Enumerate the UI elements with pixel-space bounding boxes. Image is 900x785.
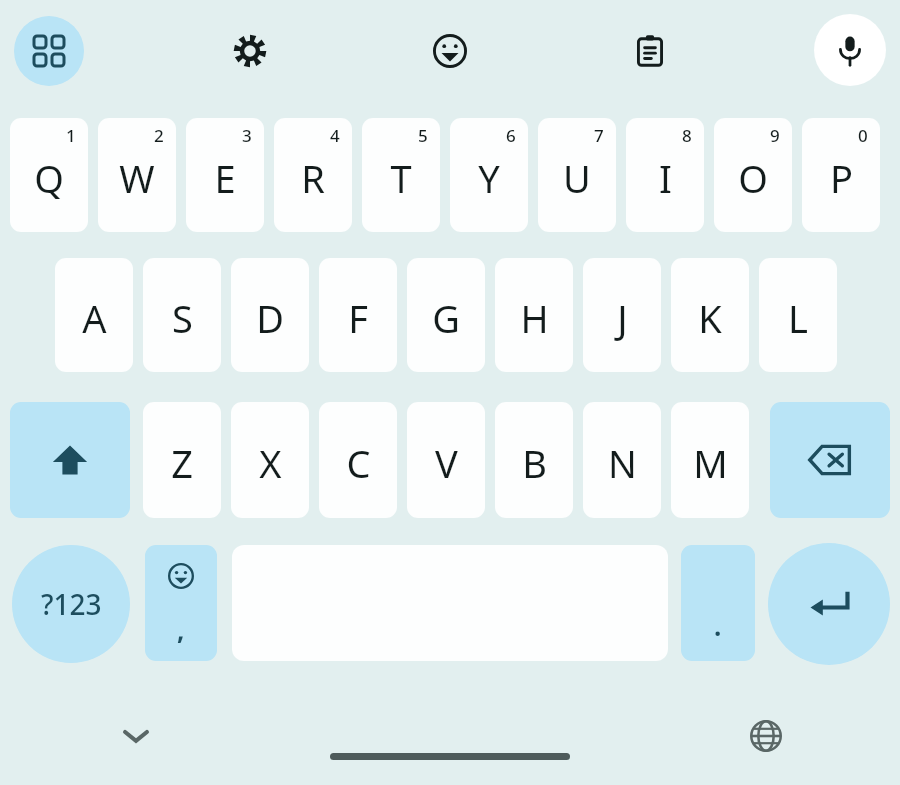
button[interactable]: J: [583, 258, 661, 372]
button[interactable]: V: [407, 402, 485, 518]
staticText: X: [259, 437, 282, 489]
staticText: C: [346, 437, 371, 489]
staticText: D: [256, 292, 284, 344]
button[interactable]: G: [407, 258, 485, 372]
button[interactable]: S: [143, 258, 221, 372]
button[interactable]: K: [671, 258, 749, 372]
button[interactable]: Toolbar: [14, 16, 84, 86]
button[interactable]: L: [759, 258, 837, 372]
button[interactable]: Enter: [768, 543, 890, 665]
staticText: B: [522, 437, 547, 489]
button[interactable]: Y: [450, 118, 528, 232]
staticText: A: [82, 292, 107, 344]
button[interactable]: P: [802, 118, 880, 232]
staticText: F: [348, 292, 368, 344]
staticText: W: [119, 152, 155, 204]
button[interactable]: N: [583, 402, 661, 518]
button[interactable]: Settings: [215, 16, 285, 86]
staticText: K: [698, 292, 722, 344]
button[interactable]: D: [231, 258, 309, 372]
staticText: ?123: [41, 585, 102, 623]
staticText: O: [738, 152, 768, 204]
staticText: M: [693, 437, 728, 489]
button[interactable]: Emoji and comma: [145, 545, 217, 661]
staticText: 6: [506, 124, 516, 147]
staticText: ,: [177, 612, 185, 647]
staticText: 5: [418, 124, 428, 147]
staticText: H: [520, 292, 549, 344]
staticText: R: [301, 152, 325, 204]
button[interactable]: B: [495, 402, 573, 518]
staticText: Q: [34, 152, 64, 204]
staticText: L: [788, 292, 808, 344]
button[interactable]: M: [671, 402, 749, 518]
button[interactable]: H: [495, 258, 573, 372]
button[interactable]: I: [626, 118, 704, 232]
button[interactable]: F: [319, 258, 397, 372]
button[interactable]: Hide keyboard: [100, 700, 172, 772]
button[interactable]: Emoji: [415, 16, 485, 86]
staticText: V: [435, 437, 458, 489]
button[interactable]: X: [231, 402, 309, 518]
button[interactable]: Q: [10, 118, 88, 232]
button[interactable]: Z: [143, 402, 221, 518]
staticText: 1: [66, 124, 76, 147]
staticText: G: [432, 292, 460, 344]
button[interactable]: E: [186, 118, 264, 232]
button[interactable]: O: [714, 118, 792, 232]
staticText: E: [214, 152, 236, 204]
button[interactable]: C: [319, 402, 397, 518]
staticText: 9: [770, 124, 780, 147]
button[interactable]: T: [362, 118, 440, 232]
button[interactable]: Shift: [10, 402, 130, 518]
staticText: N: [608, 437, 637, 489]
button[interactable]: W: [98, 118, 176, 232]
button[interactable]: Backspace: [770, 402, 890, 518]
staticText: Z: [171, 437, 193, 489]
staticText: 3: [242, 124, 252, 147]
staticText: 8: [682, 124, 692, 147]
button[interactable]: U: [538, 118, 616, 232]
staticText: 0: [858, 124, 868, 147]
staticText: 7: [594, 124, 604, 147]
staticText: .: [714, 608, 722, 643]
staticText: 2: [154, 124, 164, 147]
staticText: P: [830, 152, 853, 204]
button[interactable]: Clipboard: [615, 16, 685, 86]
button[interactable]: Change language: [730, 700, 802, 772]
staticText: S: [172, 292, 193, 344]
staticText: 4: [330, 124, 340, 147]
button[interactable]: R: [274, 118, 352, 232]
staticText: I: [659, 152, 672, 204]
button[interactable]: Voice input: [814, 14, 886, 86]
button[interactable]: A: [55, 258, 133, 372]
button[interactable]: Period: [681, 545, 755, 661]
staticText: J: [617, 292, 628, 344]
staticText: T: [390, 152, 412, 204]
staticText: Y: [478, 152, 500, 204]
button[interactable]: ?123: [12, 545, 130, 663]
staticText: U: [563, 152, 591, 204]
